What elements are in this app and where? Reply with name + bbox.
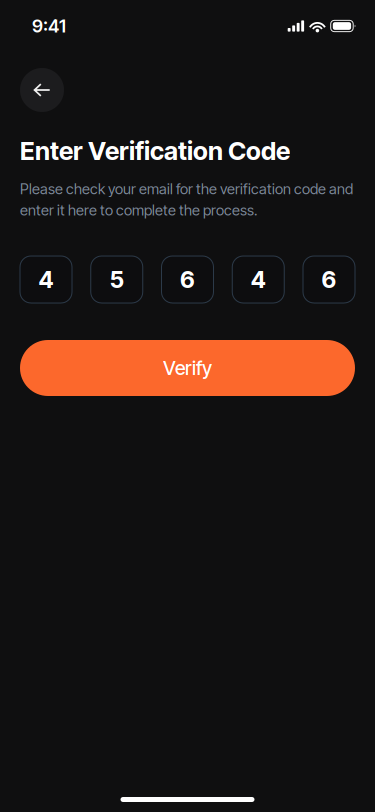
staticText: Verify	[163, 356, 212, 380]
button[interactable]: Verify	[20, 340, 355, 396]
staticText: Please check your email for the verifica…	[20, 180, 353, 219]
staticText: Enter Verification Code	[20, 135, 290, 166]
staticText: 6	[180, 265, 195, 294]
staticText: 6	[321, 265, 336, 294]
staticText: 5	[110, 265, 124, 294]
button[interactable]: Back	[20, 68, 64, 112]
staticText: 4	[251, 265, 266, 294]
staticText: 9:41	[32, 15, 66, 37]
staticText: 4	[38, 265, 53, 294]
